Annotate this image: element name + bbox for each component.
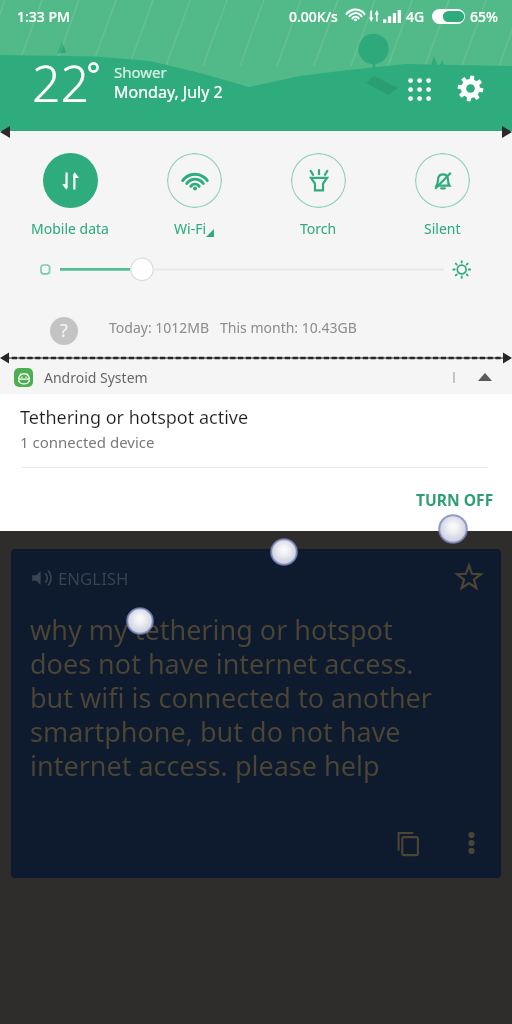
staticText: Android System [44,368,148,387]
button[interactable]: ? [0,313,512,349]
staticText: ENGLISH [58,567,129,590]
staticText: Shower [114,62,167,82]
button[interactable]: Mobile data [8,153,132,238]
button[interactable]: Copy [389,824,427,862]
staticText: Monday, July 2 [114,81,223,103]
button[interactable]: More options [452,824,490,862]
button[interactable]: Wi-Fi [132,153,256,238]
button[interactable]: Collapse [474,366,496,388]
staticText: 4G [406,7,425,26]
button[interactable]: TURN OFF [395,468,512,520]
staticText: Tethering or hotspot active [20,405,249,430]
button[interactable]: 22 [0,40,512,112]
staticText: 1 connected device [20,432,155,452]
button[interactable]: Torch [256,153,380,238]
staticText: Today: 1012MB This month: 10.43GB [109,318,357,337]
staticText: 22 [32,49,90,117]
staticText: ? [60,318,68,343]
button[interactable]: Favourite [452,563,486,593]
button[interactable]: Settings [448,66,492,110]
staticText: 0.00K/s [289,7,338,26]
staticText: 65% [470,7,498,26]
staticText: Wi-Fi [174,219,207,238]
staticText: Mobile data [31,219,109,238]
button[interactable]: Android System [14,360,496,394]
staticText: TURN OFF [416,489,494,510]
staticText: 1:33 PM [17,7,70,26]
button[interactable]: Brightness [0,255,512,285]
staticText: why my tethering or hotspot does not hav… [30,613,432,783]
staticText: Silent [424,219,461,238]
staticText: Torch [300,219,337,238]
button[interactable]: Silent [380,153,504,238]
button[interactable]: Apps [396,66,440,110]
